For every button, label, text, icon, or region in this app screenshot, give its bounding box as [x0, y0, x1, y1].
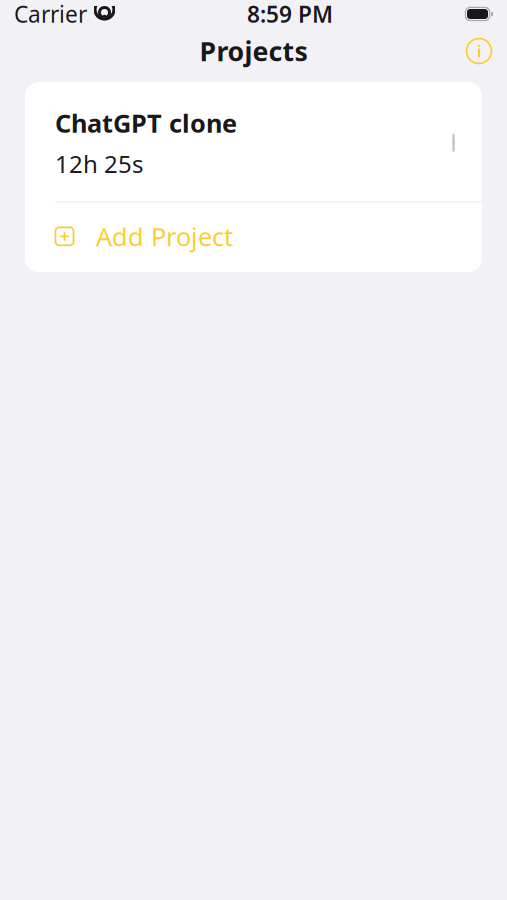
staticText: Projects — [199, 33, 307, 69]
button[interactable]: Add Project — [25, 202, 482, 272]
staticText: ChatGPT clone — [55, 106, 237, 140]
button[interactable]: ChatGPT clone — [25, 82, 482, 201]
button[interactable]: Info — [457, 29, 501, 73]
staticText: Carrier — [14, 0, 87, 29]
staticText: 12h 25s — [55, 148, 143, 179]
staticText: 8:59 PM — [247, 0, 333, 29]
staticText: Add Project — [96, 219, 233, 253]
